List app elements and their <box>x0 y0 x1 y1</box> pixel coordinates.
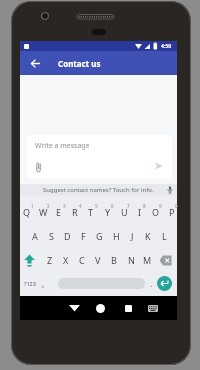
button[interactable] <box>96 304 105 313</box>
staticText: N <box>128 254 135 266</box>
staticText: 6 <box>111 203 114 209</box>
button[interactable]: G <box>91 224 107 248</box>
staticText: D <box>64 230 71 242</box>
staticText: 9 <box>159 203 162 209</box>
staticText: C <box>79 254 85 266</box>
button[interactable] <box>159 255 173 266</box>
staticText: 2 <box>47 203 50 209</box>
staticText: , <box>42 278 45 289</box>
staticText: S <box>49 230 54 242</box>
button[interactable]: W <box>35 200 51 224</box>
button[interactable] <box>23 254 36 268</box>
button[interactable]: Z <box>42 248 58 272</box>
staticText: J <box>131 230 134 242</box>
staticText: W <box>39 206 48 218</box>
button[interactable] <box>148 305 158 313</box>
button[interactable]: , <box>38 272 48 295</box>
staticText: V <box>95 254 101 266</box>
staticText: O <box>152 206 160 218</box>
button[interactable] <box>157 276 172 291</box>
button[interactable]: . <box>146 272 156 295</box>
staticText: I <box>138 206 142 218</box>
staticText: T <box>88 206 94 218</box>
button[interactable]: R <box>67 200 83 224</box>
staticText: L <box>162 230 167 242</box>
staticText: Y <box>105 206 111 218</box>
staticText: R <box>72 206 78 218</box>
staticText: B <box>111 254 117 266</box>
button[interactable] <box>166 186 174 194</box>
staticText: 5 <box>95 203 98 209</box>
button[interactable]: A <box>27 224 43 248</box>
button[interactable]: U <box>116 200 132 224</box>
staticText: K <box>145 230 151 242</box>
button[interactable]: T <box>83 200 99 224</box>
staticText: H <box>113 230 120 242</box>
staticText: 3 <box>63 203 66 209</box>
button[interactable]: K <box>140 224 156 248</box>
staticText: A <box>32 230 38 242</box>
staticText: 0 <box>175 203 178 209</box>
button[interactable]: H <box>108 224 124 248</box>
staticText: U <box>121 206 128 218</box>
staticText: Z <box>47 254 53 266</box>
button[interactable]: Q <box>19 200 35 224</box>
staticText: 4 <box>79 203 82 209</box>
staticText: 4:50 <box>161 43 171 50</box>
button[interactable]: J <box>124 224 140 248</box>
button[interactable]: V <box>90 248 106 272</box>
staticText: P <box>169 206 175 218</box>
button[interactable] <box>58 278 145 289</box>
staticText: G <box>96 230 103 242</box>
button[interactable]: Suggest contact names? Touch for info. <box>43 186 154 194</box>
staticText: Write a message <box>35 141 90 151</box>
button[interactable]: O <box>148 200 164 224</box>
button[interactable]: I <box>132 200 148 224</box>
button[interactable] <box>69 305 80 312</box>
staticText: Contact us <box>58 58 101 69</box>
button[interactable]: Write a message <box>26 135 172 178</box>
button[interactable]: S <box>43 224 59 248</box>
staticText: F <box>81 230 86 242</box>
button[interactable]: N <box>123 248 139 272</box>
button[interactable]: ?123 <box>21 272 38 295</box>
button[interactable]: B <box>106 248 122 272</box>
button[interactable]: Y <box>100 200 116 224</box>
button[interactable] <box>31 59 40 68</box>
button[interactable]: F <box>75 224 91 248</box>
button[interactable]: P <box>164 200 180 224</box>
button[interactable] <box>125 305 132 312</box>
staticText: ?123 <box>24 280 36 287</box>
staticText: X <box>63 254 69 266</box>
button[interactable]: X <box>58 248 74 272</box>
button[interactable]: D <box>59 224 75 248</box>
staticText: E <box>56 206 62 218</box>
staticText: . <box>150 278 153 289</box>
staticText: 7 <box>127 203 130 209</box>
staticText: Q <box>23 206 31 218</box>
button[interactable]: L <box>156 224 172 248</box>
staticText: M <box>143 254 152 266</box>
button[interactable]: E <box>51 200 67 224</box>
button[interactable]: M <box>139 248 155 272</box>
staticText: 1 <box>31 203 34 209</box>
staticText: 8 <box>143 203 146 209</box>
button[interactable]: C <box>74 248 90 272</box>
